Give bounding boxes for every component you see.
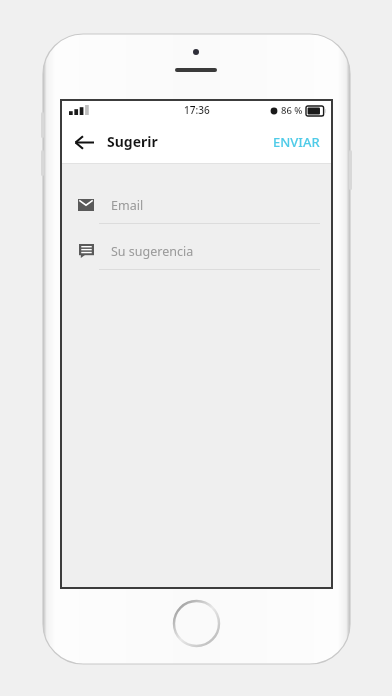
button[interactable]: ENVIAR (261, 123, 332, 161)
staticText: 86 % (281, 104, 303, 117)
staticText: ENVIAR (273, 133, 320, 151)
staticText: Sugerir (107, 132, 158, 151)
staticText: Su sugerencia (111, 243, 194, 260)
staticText: 17:36 (184, 103, 210, 117)
staticText: Email (111, 197, 144, 214)
button[interactable]: Email (61, 194, 332, 224)
button[interactable]: Back (67, 125, 101, 159)
button[interactable]: Su sugerencia (61, 240, 332, 270)
